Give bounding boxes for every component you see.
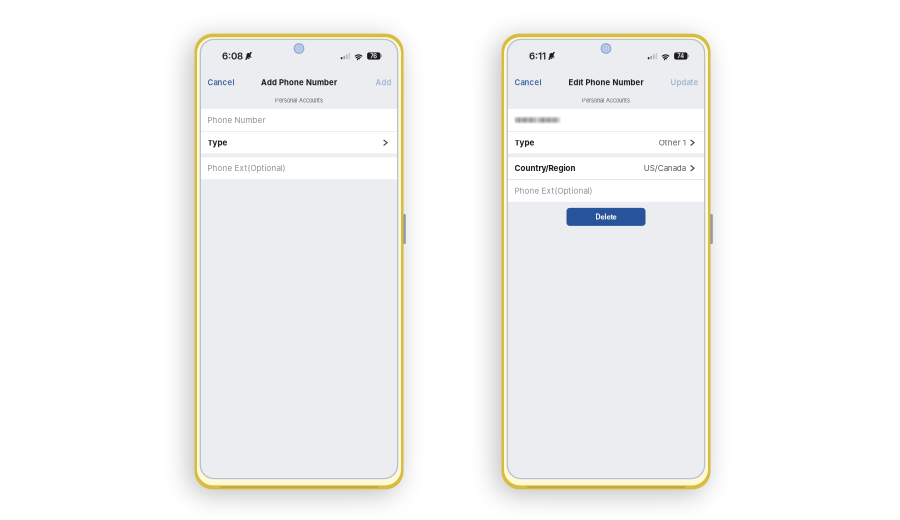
button[interactable]: Type: [201, 132, 397, 154]
staticText: Personal Accounts: [275, 97, 323, 104]
staticText: Cancel: [514, 78, 541, 87]
staticText: Other 1: [659, 138, 686, 148]
staticText: Country/Region: [514, 163, 575, 173]
button[interactable]: Cancel: [511, 73, 544, 92]
staticText: Add: [375, 78, 391, 87]
staticText: 74: [677, 52, 684, 60]
staticText: Phone Ext(Optional): [514, 186, 592, 196]
staticText: Phone Number: [207, 115, 265, 125]
staticText: Delete: [595, 213, 616, 221]
button[interactable]: Type: [508, 132, 704, 154]
button[interactable]: Delete: [566, 208, 645, 226]
staticText: 6:11: [529, 50, 546, 62]
button[interactable]: Add: [372, 73, 394, 92]
staticText: Phone Ext(Optional): [207, 163, 285, 173]
staticText: Update: [670, 78, 698, 87]
staticText: US/Canada: [644, 163, 686, 173]
staticText: Type: [207, 138, 227, 148]
staticText: Cancel: [207, 78, 234, 87]
staticText: Personal Accounts: [582, 97, 630, 104]
staticText: 6:08: [222, 50, 243, 62]
button[interactable]: Update: [667, 73, 701, 92]
staticText: 76: [370, 52, 377, 60]
button[interactable]: Cancel: [204, 73, 237, 92]
staticText: Edit Phone Number: [568, 78, 643, 87]
button[interactable]: Country/Region: [508, 157, 704, 179]
staticText: Type: [514, 138, 534, 148]
staticText: Add Phone Number: [261, 78, 337, 87]
